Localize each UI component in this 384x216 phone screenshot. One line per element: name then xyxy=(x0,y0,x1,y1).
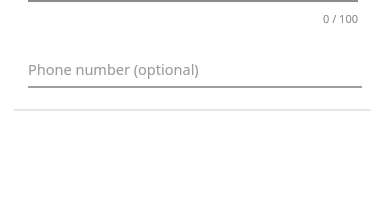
button[interactable]: Phone number (optional) xyxy=(0,50,384,88)
staticText: 0 / 100 xyxy=(323,11,358,26)
staticText: Phone number (optional) xyxy=(28,59,199,79)
